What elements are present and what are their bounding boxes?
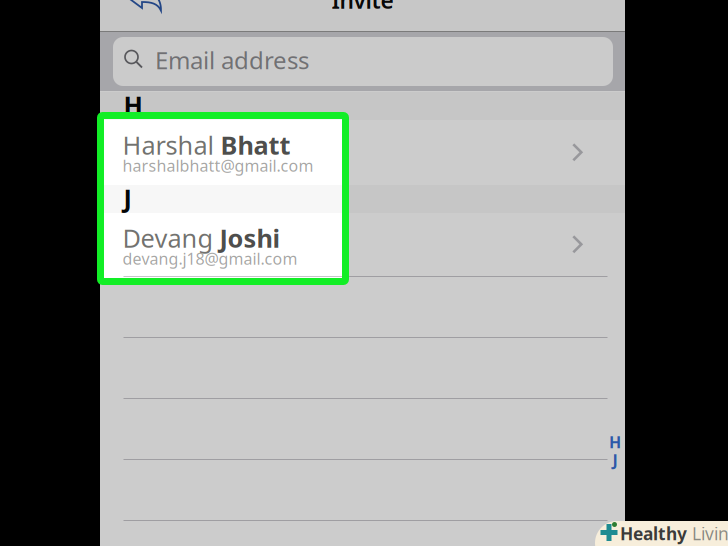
staticText: Email address — [155, 44, 309, 76]
button[interactable]: Devang — [100, 213, 625, 276]
button[interactable]: Back — [120, 0, 168, 13]
staticText: Harshal — [122, 128, 214, 162]
staticText: harshalbhatt@gmail.com — [122, 155, 313, 176]
staticText: Invite — [331, 0, 393, 15]
staticText: Devang — [122, 221, 213, 255]
staticText: devang.j18@gmail.com — [122, 248, 297, 269]
staticText: Harshal — [122, 128, 214, 162]
staticText: Bhatt — [220, 128, 290, 162]
staticText: H — [123, 88, 142, 122]
button[interactable]: Back — [120, 0, 168, 13]
staticText: Devang — [122, 221, 213, 255]
staticText: harshalbhatt@gmail.com — [122, 155, 313, 176]
button[interactable]: Harshal — [100, 120, 625, 185]
staticText: Living — [692, 522, 728, 545]
staticText: J — [123, 181, 131, 215]
staticText: H — [609, 431, 621, 453]
staticText: devang.j18@gmail.com — [122, 248, 297, 269]
staticText: Joshi — [219, 221, 280, 255]
staticText: J — [123, 181, 131, 215]
staticText: Email address — [155, 44, 309, 76]
staticText: H — [123, 88, 142, 122]
staticText: J — [612, 449, 617, 471]
button[interactable]: Harshal — [100, 120, 625, 185]
staticText: Bhatt — [220, 128, 290, 162]
staticText: Invite — [331, 0, 393, 15]
staticText: Healthy — [620, 522, 687, 545]
button[interactable]: H — [608, 436, 622, 448]
button[interactable]: J — [608, 454, 622, 466]
button[interactable]: Devang — [100, 213, 625, 276]
staticText: Joshi — [219, 221, 280, 255]
